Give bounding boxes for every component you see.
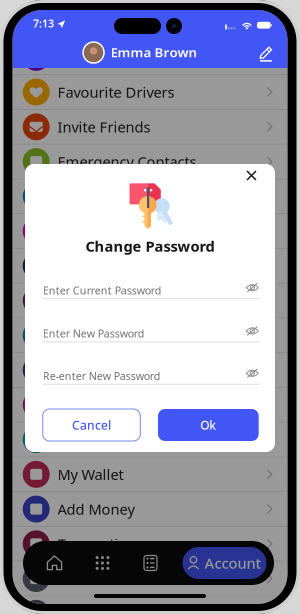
staticText: Legal [58, 360, 95, 380]
staticText: Transactions [58, 534, 144, 554]
button[interactable]: Ok [158, 409, 259, 441]
staticText: My Wallet [58, 465, 124, 484]
button[interactable]: My Wallet [12, 457, 287, 492]
staticText: Favourite Drivers [58, 82, 175, 102]
button[interactable]: Invite Friends [12, 110, 287, 145]
staticText: Emma Brown [110, 43, 197, 61]
staticText: Add Money [58, 499, 135, 519]
button[interactable]: Account [182, 547, 266, 579]
staticText: Invite Friends [58, 117, 151, 137]
button[interactable]: Add Money [12, 492, 287, 527]
button[interactable]: Favourite Drivers [12, 75, 287, 110]
button[interactable]: Free Rides [12, 318, 287, 353]
button[interactable]: Cancel [43, 409, 140, 441]
button[interactable]: Enter New Password [42, 317, 259, 342]
button[interactable]: Promotions [12, 214, 287, 249]
button[interactable]: Orders [126, 544, 174, 582]
staticText: Ride History [58, 48, 141, 67]
button[interactable]: Refer & Earn [12, 562, 287, 596]
button[interactable]: Help [12, 284, 287, 318]
staticText: Free Rides [58, 326, 129, 345]
button[interactable]: Settings [12, 249, 287, 284]
staticText: Refer & Earn [58, 569, 144, 588]
button[interactable]: Ride History [12, 40, 287, 75]
staticText: Emergency Contacts [58, 152, 197, 171]
staticText: Account [204, 553, 261, 573]
staticText: Safety Toolkit [58, 187, 149, 206]
button[interactable]: Emergency Contacts [12, 145, 287, 179]
staticText: Ok [200, 417, 216, 433]
staticText: Cancel [72, 417, 111, 433]
button[interactable]: Edit profile [259, 46, 273, 63]
staticText: Change Password [85, 236, 214, 256]
button[interactable]: Share App [12, 423, 287, 457]
staticText: 7:13 [33, 16, 54, 30]
button[interactable]: Services [78, 544, 126, 582]
button[interactable]: Home [30, 544, 78, 582]
button[interactable]: Close [246, 170, 268, 192]
staticText: Rate Us [58, 395, 110, 415]
button[interactable]: Safety Toolkit [12, 179, 287, 214]
staticText: Help [58, 291, 90, 310]
button[interactable]: Transactions [12, 527, 287, 562]
staticText: Enter Current Password [43, 283, 162, 297]
staticText: Log Out [58, 604, 113, 614]
staticText: Share App [58, 430, 128, 449]
button[interactable]: Log Out [12, 596, 287, 614]
staticText: Re-enter New Password [43, 369, 161, 383]
button[interactable]: Enter Current Password [42, 274, 259, 299]
staticText: Enter New Password [43, 326, 145, 341]
button[interactable]: Legal [12, 353, 287, 388]
button[interactable]: Rate Us [12, 388, 287, 423]
button[interactable]: Re-enter New Password [42, 360, 259, 385]
